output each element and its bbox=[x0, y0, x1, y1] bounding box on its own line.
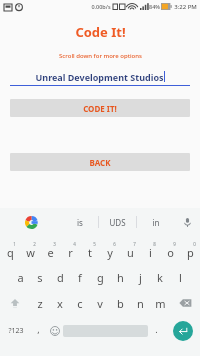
button[interactable]: 0 bbox=[180, 238, 200, 264]
staticText: 6 bbox=[113, 241, 116, 247]
button[interactable]: Backspace bbox=[170, 290, 200, 316]
staticText: u bbox=[127, 245, 134, 260]
button[interactable]: in bbox=[137, 208, 174, 236]
staticText: 1 bbox=[13, 241, 16, 247]
staticText: Unreal Development Studios bbox=[35, 71, 164, 83]
button[interactable]: h bbox=[110, 264, 130, 290]
button[interactable]: g bbox=[90, 264, 110, 290]
staticText: 2 bbox=[33, 241, 36, 247]
button[interactable]: f bbox=[70, 264, 90, 290]
staticText: z bbox=[37, 296, 43, 311]
staticText: j bbox=[139, 270, 142, 285]
staticText: BACK bbox=[89, 157, 111, 168]
button[interactable]: d bbox=[50, 264, 70, 290]
staticText: is bbox=[77, 217, 83, 228]
staticText: g bbox=[97, 270, 104, 285]
staticText: a bbox=[17, 270, 24, 285]
button[interactable]: Google bbox=[0, 208, 62, 236]
staticText: p bbox=[187, 245, 194, 260]
button[interactable]: a bbox=[10, 264, 30, 290]
button[interactable]: x bbox=[50, 290, 70, 316]
button[interactable]: , bbox=[31, 316, 46, 346]
button[interactable]: j bbox=[130, 264, 150, 290]
staticText: t bbox=[88, 245, 92, 260]
button[interactable]: 4 bbox=[60, 238, 80, 264]
staticText: w bbox=[26, 245, 35, 260]
staticText: f bbox=[78, 270, 82, 285]
staticText: b bbox=[117, 296, 124, 311]
button[interactable]: 5 bbox=[80, 238, 100, 264]
staticText: Scroll down for more options bbox=[59, 52, 142, 60]
staticText: ?123 bbox=[8, 326, 24, 336]
button[interactable]: UDS bbox=[99, 208, 136, 236]
staticText: 3 bbox=[53, 241, 56, 247]
staticText: d bbox=[57, 270, 64, 285]
staticText: o bbox=[167, 245, 174, 260]
staticText: e bbox=[47, 245, 54, 260]
button[interactable]: 9 bbox=[160, 238, 180, 264]
button[interactable]: Emoji bbox=[46, 316, 63, 346]
staticText: 5 bbox=[93, 241, 96, 247]
staticText: 9 bbox=[173, 241, 176, 247]
staticText: q bbox=[7, 245, 14, 260]
button[interactable]: Voice input bbox=[174, 208, 200, 236]
staticText: v bbox=[97, 296, 103, 311]
button[interactable]: is bbox=[62, 208, 98, 236]
button[interactable]: m bbox=[150, 290, 170, 316]
staticText: 4 bbox=[73, 241, 76, 247]
button[interactable]: 1 bbox=[0, 238, 20, 264]
button[interactable]: k bbox=[150, 264, 170, 290]
button[interactable]: Shift bbox=[0, 290, 30, 316]
button[interactable]: 3 bbox=[40, 238, 60, 264]
staticText: h bbox=[117, 270, 124, 285]
button[interactable]: s bbox=[30, 264, 50, 290]
staticText: n bbox=[137, 296, 144, 311]
button[interactable]: BACK bbox=[10, 153, 190, 171]
staticText: s bbox=[37, 270, 43, 285]
button[interactable]: 2 bbox=[20, 238, 40, 264]
button[interactable]: z bbox=[30, 290, 50, 316]
staticText: 0.00b/s bbox=[91, 3, 111, 10]
staticText: i bbox=[149, 245, 152, 260]
button[interactable]: v bbox=[90, 290, 110, 316]
staticText: y bbox=[107, 245, 113, 260]
staticText: c bbox=[77, 296, 83, 311]
staticText: 8 bbox=[153, 241, 156, 247]
button[interactable]: b bbox=[110, 290, 130, 316]
staticText: r bbox=[68, 245, 73, 260]
staticText: UDS bbox=[109, 217, 126, 228]
button[interactable]: 6 bbox=[100, 238, 120, 264]
button[interactable]: 8 bbox=[140, 238, 160, 264]
staticText: Code It! bbox=[75, 23, 126, 41]
staticText: 0 bbox=[193, 241, 196, 247]
staticText: l bbox=[179, 270, 182, 285]
staticText: k bbox=[157, 270, 163, 285]
button[interactable]: . bbox=[148, 316, 165, 346]
button[interactable]: l bbox=[170, 264, 190, 290]
staticText: 84% bbox=[149, 3, 160, 10]
button[interactable]: Unreal Development Studios bbox=[10, 70, 190, 86]
button[interactable]: CODE IT! bbox=[10, 99, 190, 117]
staticText: , bbox=[37, 323, 40, 335]
button[interactable]: 7 bbox=[120, 238, 140, 264]
staticText: x bbox=[57, 296, 63, 311]
staticText: in bbox=[152, 217, 160, 228]
staticText: 7 bbox=[133, 241, 136, 247]
button[interactable]: c bbox=[70, 290, 90, 316]
staticText: CODE IT! bbox=[83, 103, 117, 114]
button[interactable]: n bbox=[130, 290, 150, 316]
staticText: m bbox=[155, 296, 166, 311]
staticText: 3:22 PM bbox=[174, 3, 197, 11]
staticText: . bbox=[155, 323, 158, 335]
button[interactable]: Enter bbox=[173, 321, 193, 341]
button[interactable]: ?123 bbox=[0, 316, 31, 346]
